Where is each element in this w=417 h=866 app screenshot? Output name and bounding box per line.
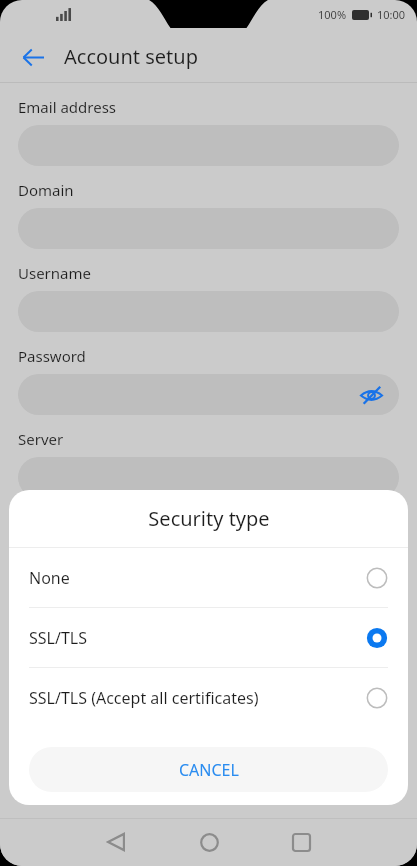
button[interactable]: Recent apps (279, 820, 323, 864)
staticText: Domain (18, 180, 74, 200)
staticText: Password (18, 346, 86, 366)
staticText: 10:00 (377, 7, 406, 22)
staticText: None (29, 567, 366, 589)
staticText: SSL/TLS (29, 627, 366, 649)
button[interactable] (18, 457, 399, 498)
staticText: Account setup (64, 43, 198, 70)
button[interactable]: CANCEL (29, 747, 388, 792)
button[interactable]: None (9, 548, 408, 607)
button[interactable]: Back (10, 34, 56, 80)
staticText: SSL/TLS (Accept all certificates) (29, 687, 366, 709)
button[interactable]: SSL/TLS (Accept all certificates) (9, 668, 408, 727)
button[interactable]: Home (187, 820, 231, 864)
staticText: Username (18, 263, 91, 283)
staticText: 100% (318, 7, 347, 22)
staticText: CANCEL (179, 759, 239, 781)
staticText: Email address (18, 97, 117, 117)
button[interactable]: Show password (18, 374, 399, 415)
staticText: Security type (148, 505, 270, 532)
button[interactable]: Back (94, 820, 138, 864)
button[interactable]: SSL/TLS (9, 608, 408, 667)
staticText: Server (18, 429, 64, 449)
button[interactable]: Show password (352, 376, 390, 414)
